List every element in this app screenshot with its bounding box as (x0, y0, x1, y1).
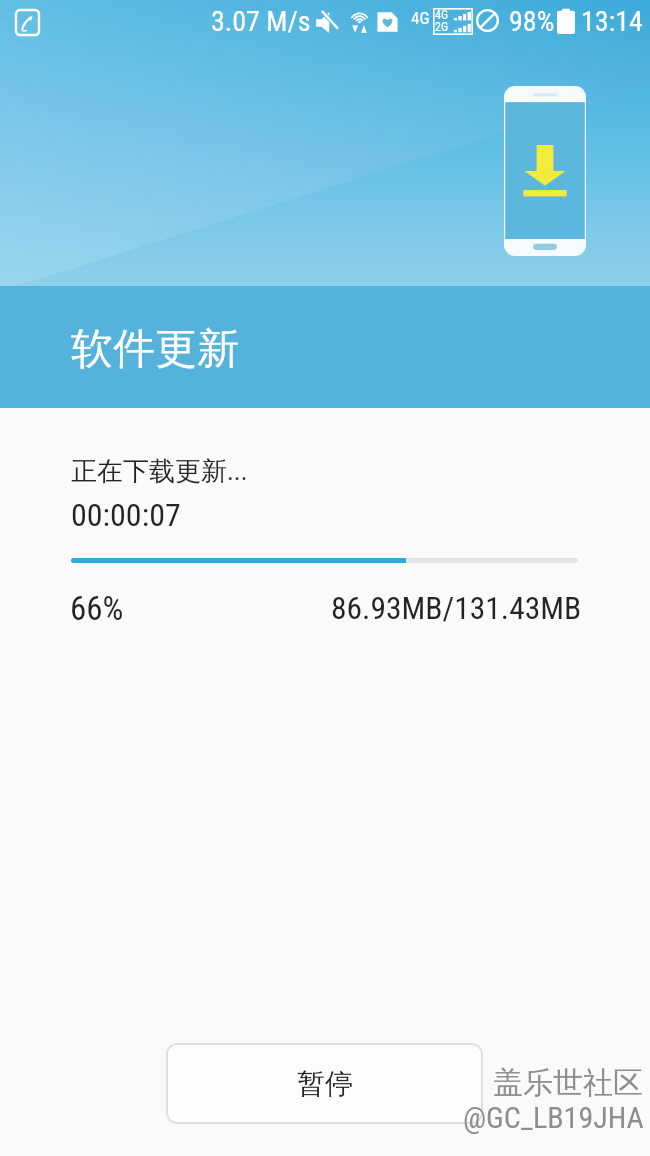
other: Mobile signal 4G 2G (433, 8, 473, 35)
staticText: 4G (411, 8, 430, 28)
other: Screen rotation (16, 10, 39, 35)
other: Sound muted (315, 11, 338, 35)
staticText: 3.07 M/s (211, 5, 311, 38)
other: SD card (377, 11, 398, 33)
other: Battery 98 percent (557, 7, 575, 36)
staticText: 正在下载更新... (71, 455, 248, 488)
staticText: @GC_LB19JHA (463, 1100, 644, 1135)
staticText: 13:14 (581, 5, 643, 38)
staticText: 暂停 (297, 1066, 353, 1101)
staticText: 2G (435, 20, 449, 34)
staticText: 98% (509, 5, 555, 38)
staticText: 86.93MB/131.43MB (331, 590, 582, 627)
staticText: 4G (435, 8, 449, 22)
other: Software update download illustration (504, 86, 586, 256)
button[interactable]: 暂停 (166, 1043, 483, 1124)
other: Wi-Fi (350, 9, 369, 33)
staticText: 00:00:07 (71, 496, 181, 534)
staticText: 软件更新 (71, 323, 239, 376)
other: Do not disturb (476, 9, 499, 32)
staticText: 66% (70, 589, 124, 628)
staticText: 盖乐世社区 (493, 1064, 643, 1102)
